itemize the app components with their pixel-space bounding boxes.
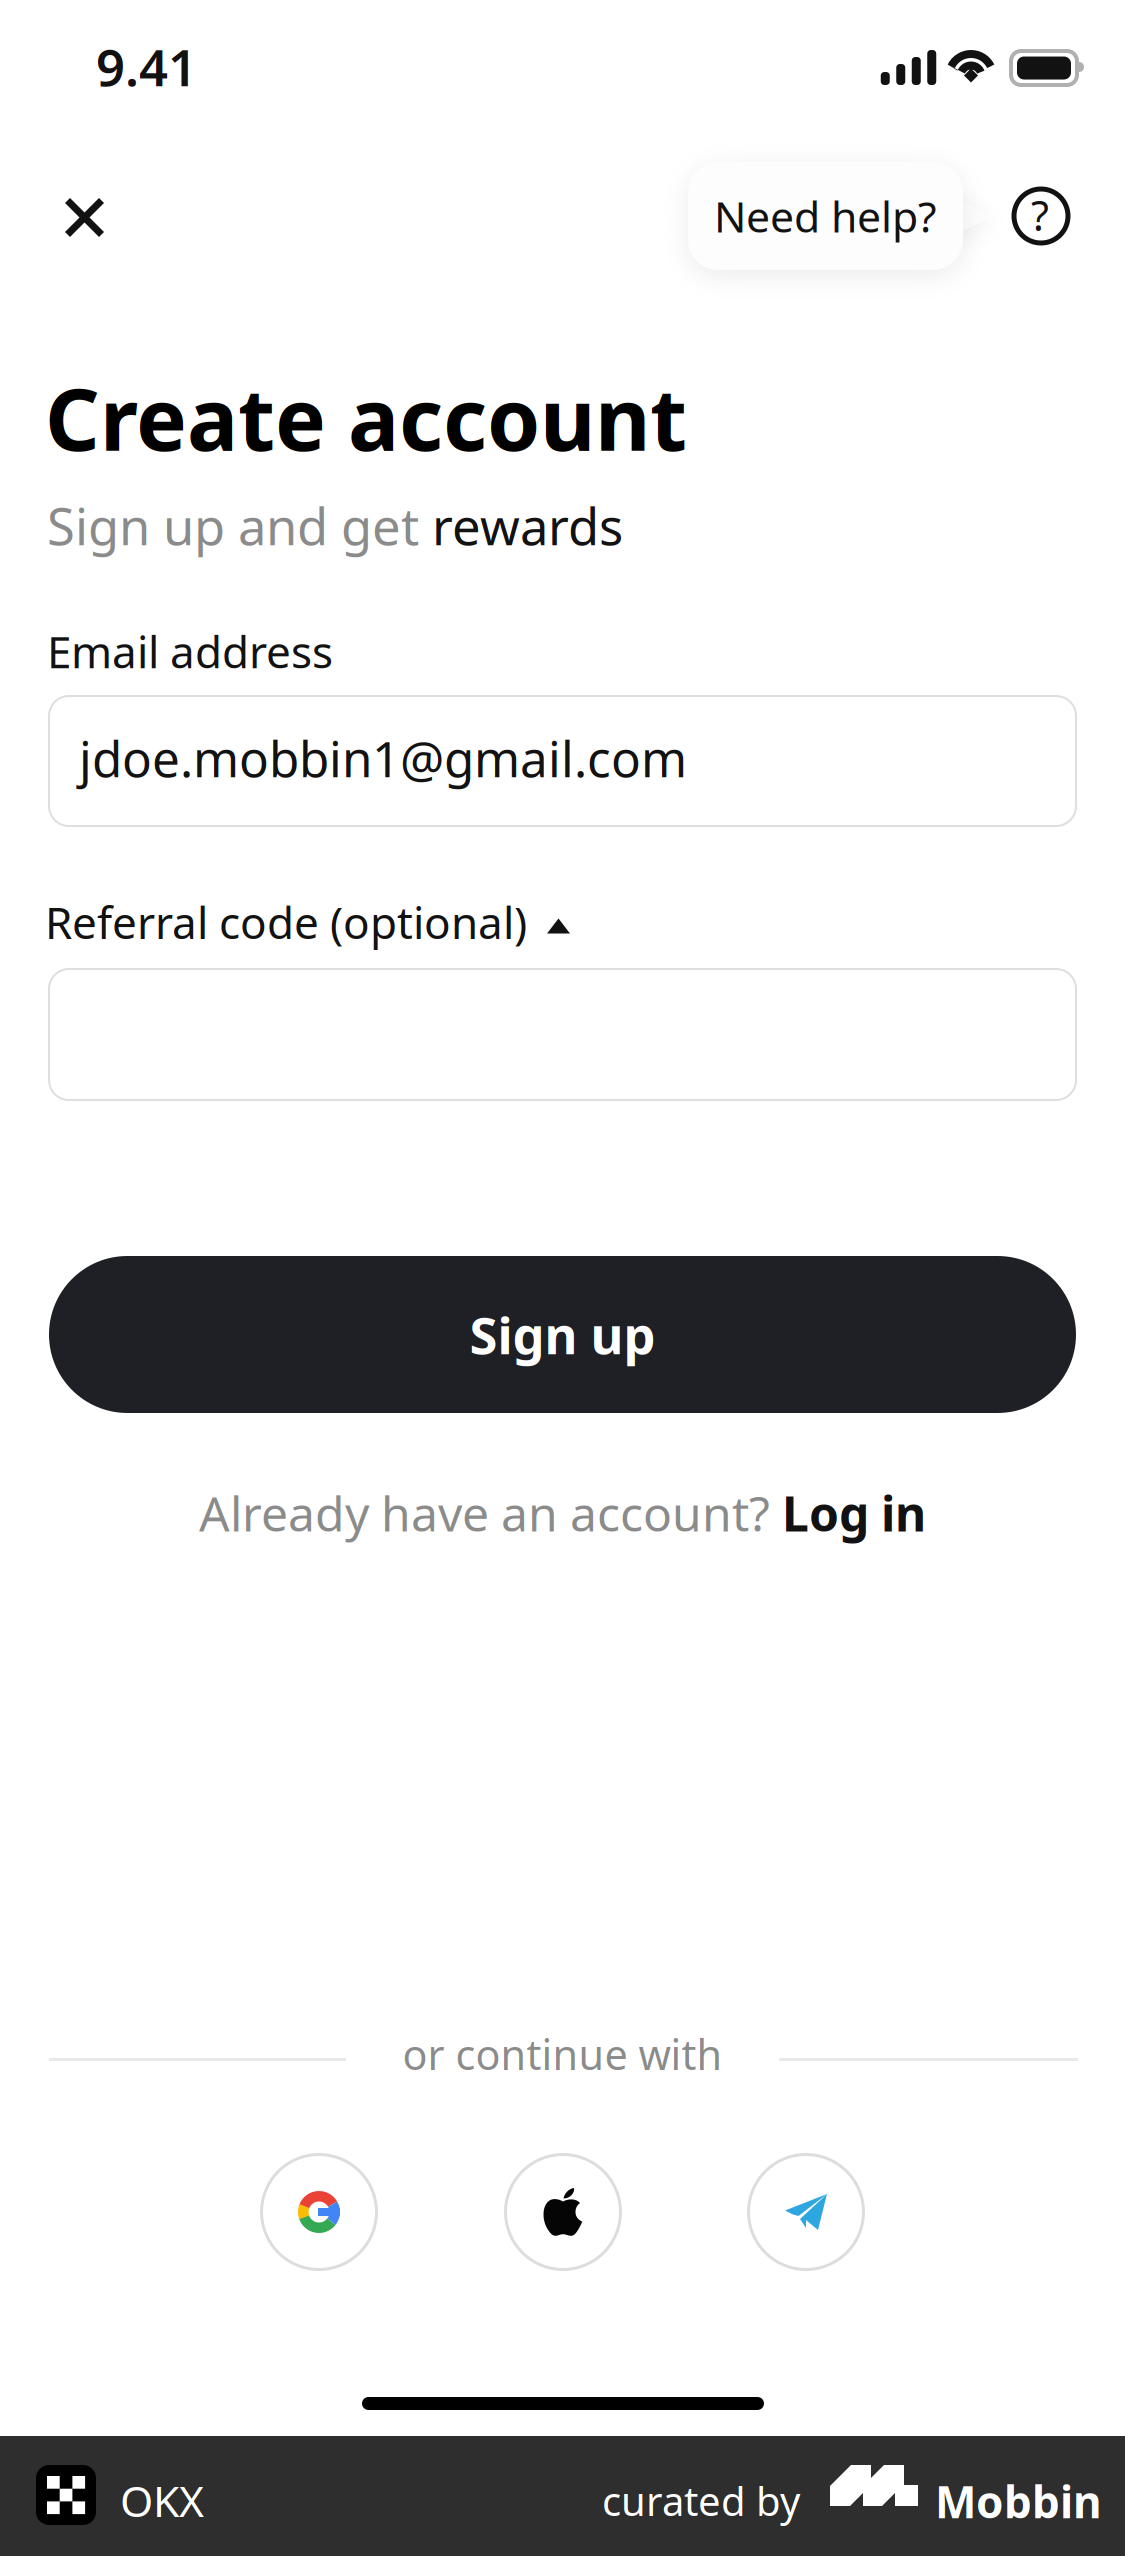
staticText: Referral code (optional) — [45, 893, 527, 951]
button[interactable]: Help — [975, 150, 1107, 282]
staticText: Mobbin — [935, 2472, 1102, 2530]
staticText: or continue with — [402, 2027, 722, 2081]
staticText: jdoe.mobbin1@gmail.com — [79, 725, 687, 791]
staticText: ? — [1031, 188, 1049, 242]
staticText: Sign up — [469, 1301, 655, 1368]
button[interactable]: Referral code (optional) — [45, 882, 665, 962]
staticText: Need help? — [714, 188, 937, 244]
button[interactable]: Continue with Apple — [504, 2153, 622, 2271]
staticText: curated by — [602, 2474, 800, 2527]
staticText: rewards — [432, 492, 623, 559]
button[interactable]: Close — [18, 150, 150, 282]
button[interactable]: Already have an account? — [0, 1485, 1125, 1541]
staticText: Already have an account? — [199, 1481, 782, 1545]
staticText: 9.41 — [96, 33, 197, 100]
button[interactable]: Need help? — [688, 162, 963, 270]
button[interactable]: Continue with Telegram — [747, 2153, 865, 2271]
button[interactable]: jdoe.mobbin1@gmail.com — [49, 696, 1076, 826]
button[interactable]: Sign up — [49, 1256, 1076, 1413]
staticText: Sign up and get — [47, 492, 432, 559]
staticText: OKX — [120, 2472, 204, 2529]
staticText: Create account — [45, 361, 687, 474]
staticText: Email address — [47, 622, 333, 680]
button[interactable]: Continue with Google — [260, 2153, 378, 2271]
staticText: Log in — [782, 1481, 926, 1545]
